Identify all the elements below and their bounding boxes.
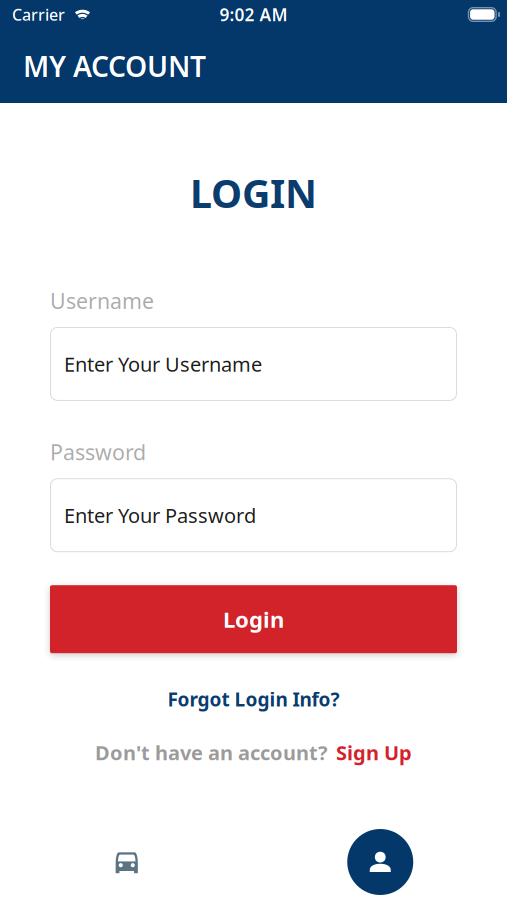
staticText: 9:02 AM <box>219 3 287 26</box>
staticText: Carrier <box>12 4 65 25</box>
staticText: Password <box>50 438 146 466</box>
staticText: Username <box>50 287 154 315</box>
staticText: Enter Your Password <box>64 502 256 529</box>
button[interactable]: Account <box>253 824 507 900</box>
staticText: Don't have an account? <box>95 739 328 766</box>
button[interactable]: Forgot Login Info? <box>0 679 507 719</box>
staticText: LOGIN <box>190 166 317 220</box>
staticText: Sign Up <box>336 739 412 766</box>
staticText: MY ACCOUNT <box>23 47 206 85</box>
staticText: Login <box>223 604 284 634</box>
button[interactable]: Vehicles <box>0 824 253 900</box>
staticText: Forgot Login Info? <box>167 686 339 712</box>
button[interactable]: Sign Up <box>336 739 412 766</box>
staticText: Enter Your Username <box>64 350 262 377</box>
button[interactable]: Login <box>50 585 457 653</box>
